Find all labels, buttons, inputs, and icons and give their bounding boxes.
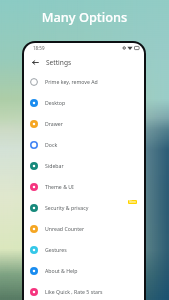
staticText: Like Quick , Rate 5 stars: [45, 288, 103, 295]
staticText: Sidebar: [45, 162, 64, 169]
button[interactable]: Prime key, remove Ad: [24, 71, 144, 92]
staticText: Desktop: [45, 99, 66, 106]
staticText: Theme & UI: [45, 183, 74, 190]
button[interactable]: Drawer: [24, 113, 144, 134]
staticText: About & Help: [45, 267, 78, 274]
button[interactable]: Unread Counter: [24, 218, 144, 239]
staticText: Many Options: [0, 8, 169, 25]
staticText: Prime key, remove Ad: [45, 78, 98, 85]
staticText: 18:59: [33, 45, 45, 51]
button[interactable]: Dock: [24, 134, 144, 155]
button[interactable]: Security & privacy: [24, 197, 144, 218]
staticText: Security & privacy: [45, 204, 89, 211]
staticText: Gestures: [45, 246, 67, 253]
staticText: Dock: [45, 141, 58, 148]
button[interactable]: Gestures: [24, 239, 144, 260]
staticText: New: [129, 200, 136, 204]
button[interactable]: Theme & UI: [24, 176, 144, 197]
button[interactable]: Back: [29, 56, 42, 69]
button[interactable]: Desktop: [24, 92, 144, 113]
staticText: Drawer: [45, 120, 63, 127]
button[interactable]: About & Help: [24, 260, 144, 281]
staticText: Unread Counter: [45, 225, 85, 232]
staticText: Settings: [46, 58, 72, 67]
button[interactable]: Like Quick , Rate 5 stars: [24, 281, 144, 300]
button[interactable]: Sidebar: [24, 155, 144, 176]
